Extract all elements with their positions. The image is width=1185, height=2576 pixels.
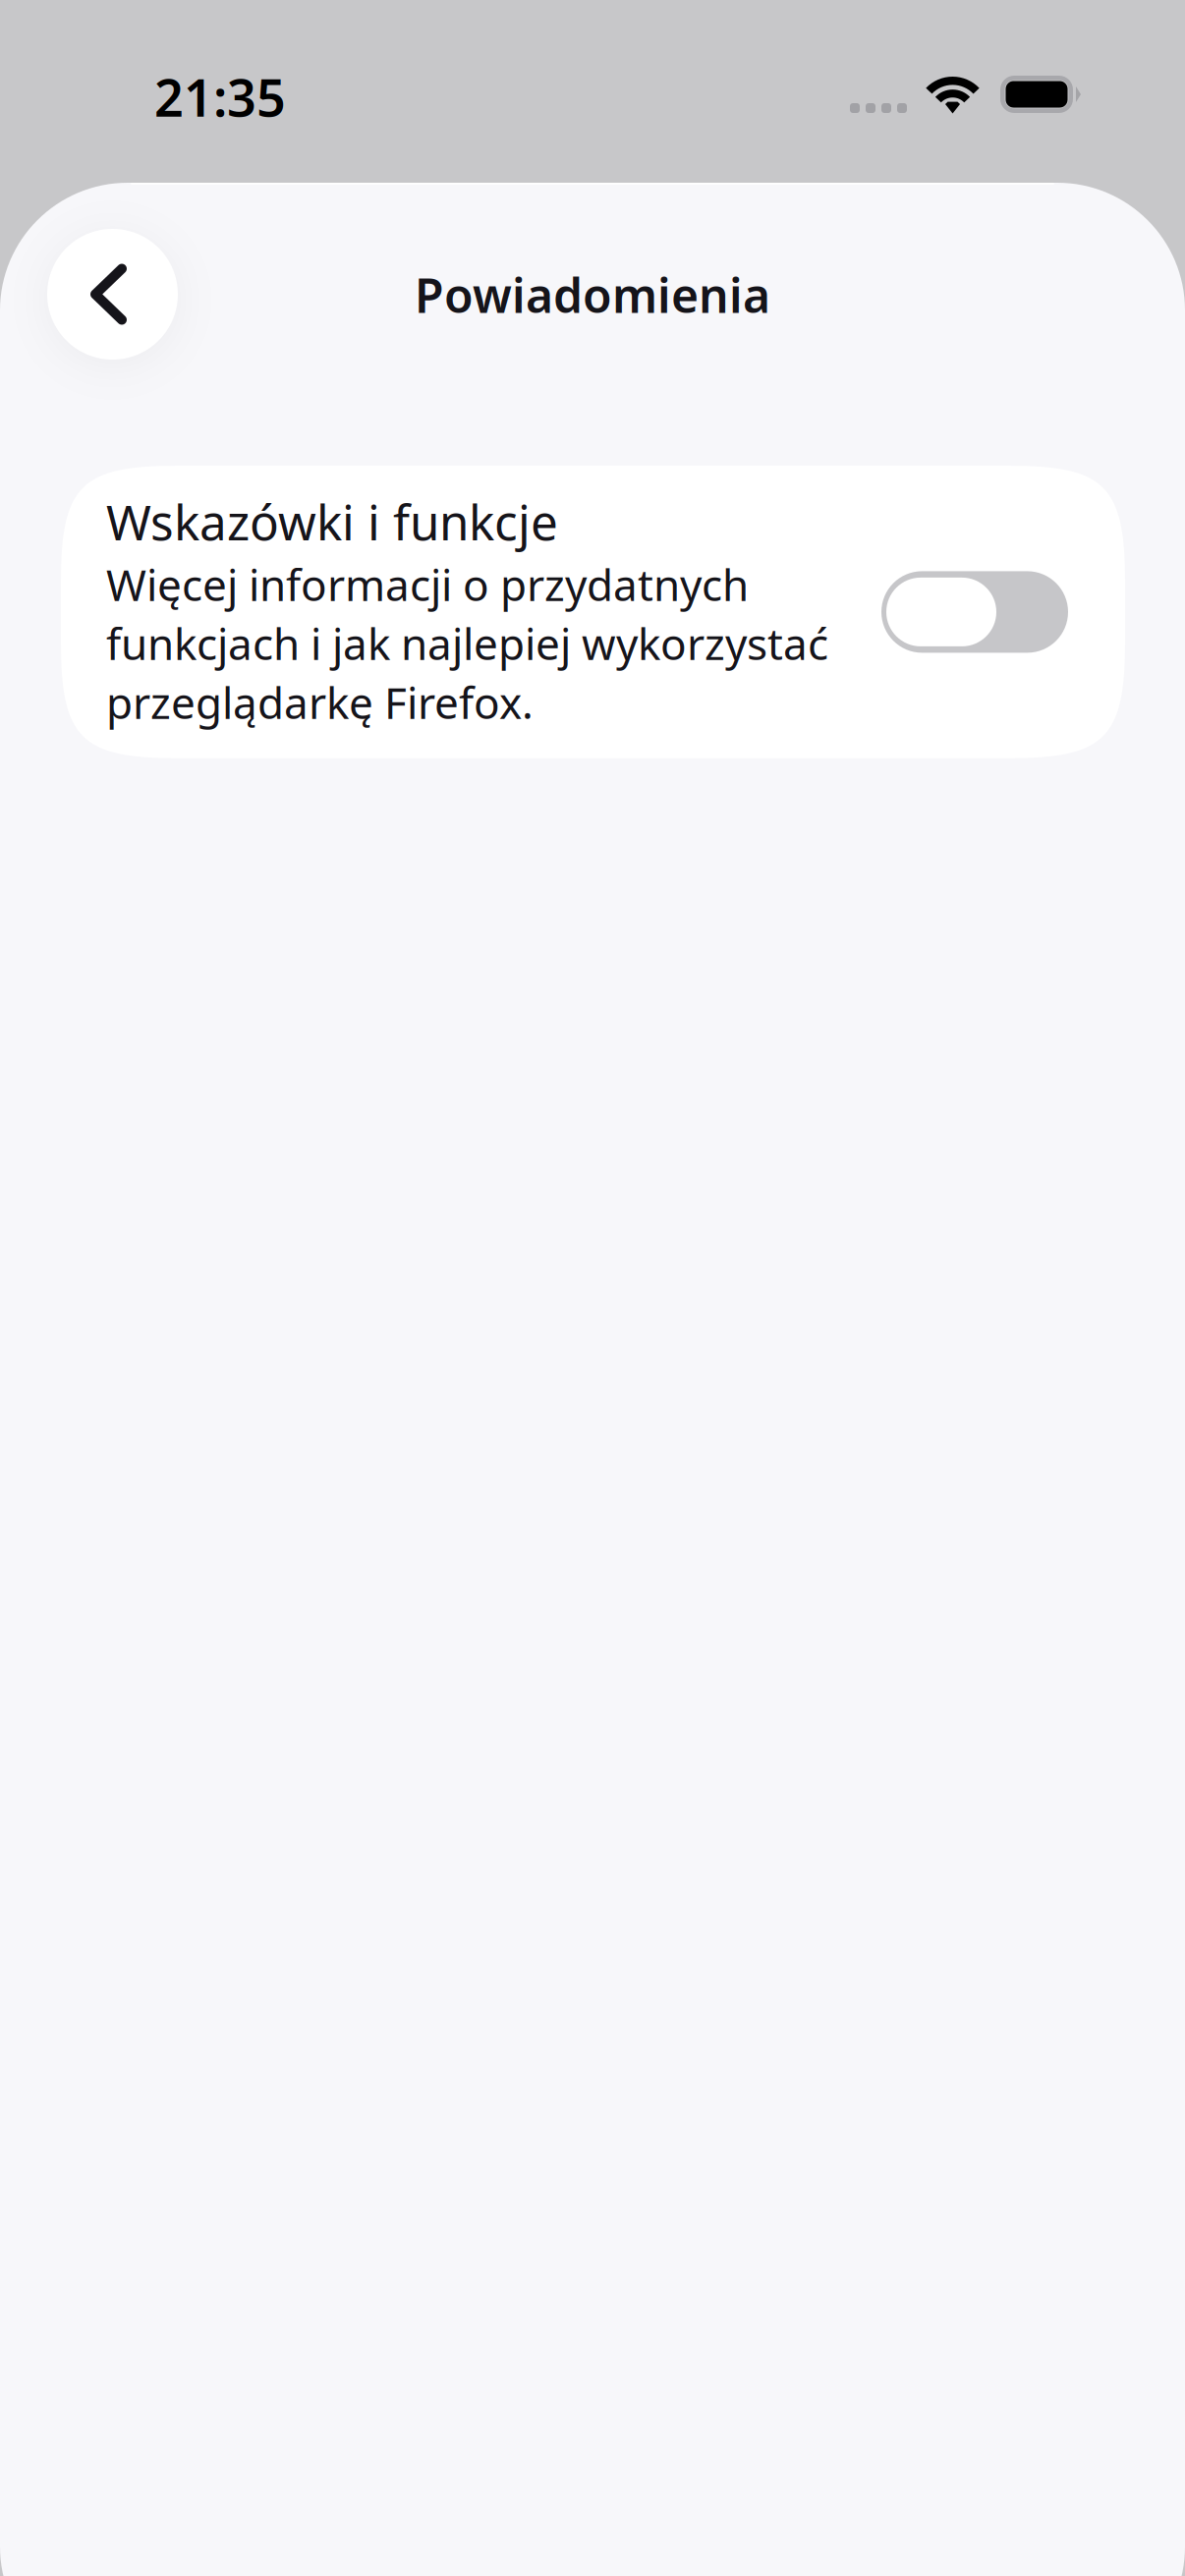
button[interactable]: Wskazówki i funkcje [61, 466, 1125, 758]
staticText: Więcej informacji o przydatnych funkcjac… [106, 556, 828, 731]
staticText: 21:35 [154, 63, 286, 131]
button[interactable]: Wyłączone [881, 571, 1068, 653]
button[interactable]: Wstecz [47, 229, 178, 360]
staticText: Powiadomienia [415, 263, 770, 326]
staticText: Wskazówki i funkcje [106, 489, 558, 554]
